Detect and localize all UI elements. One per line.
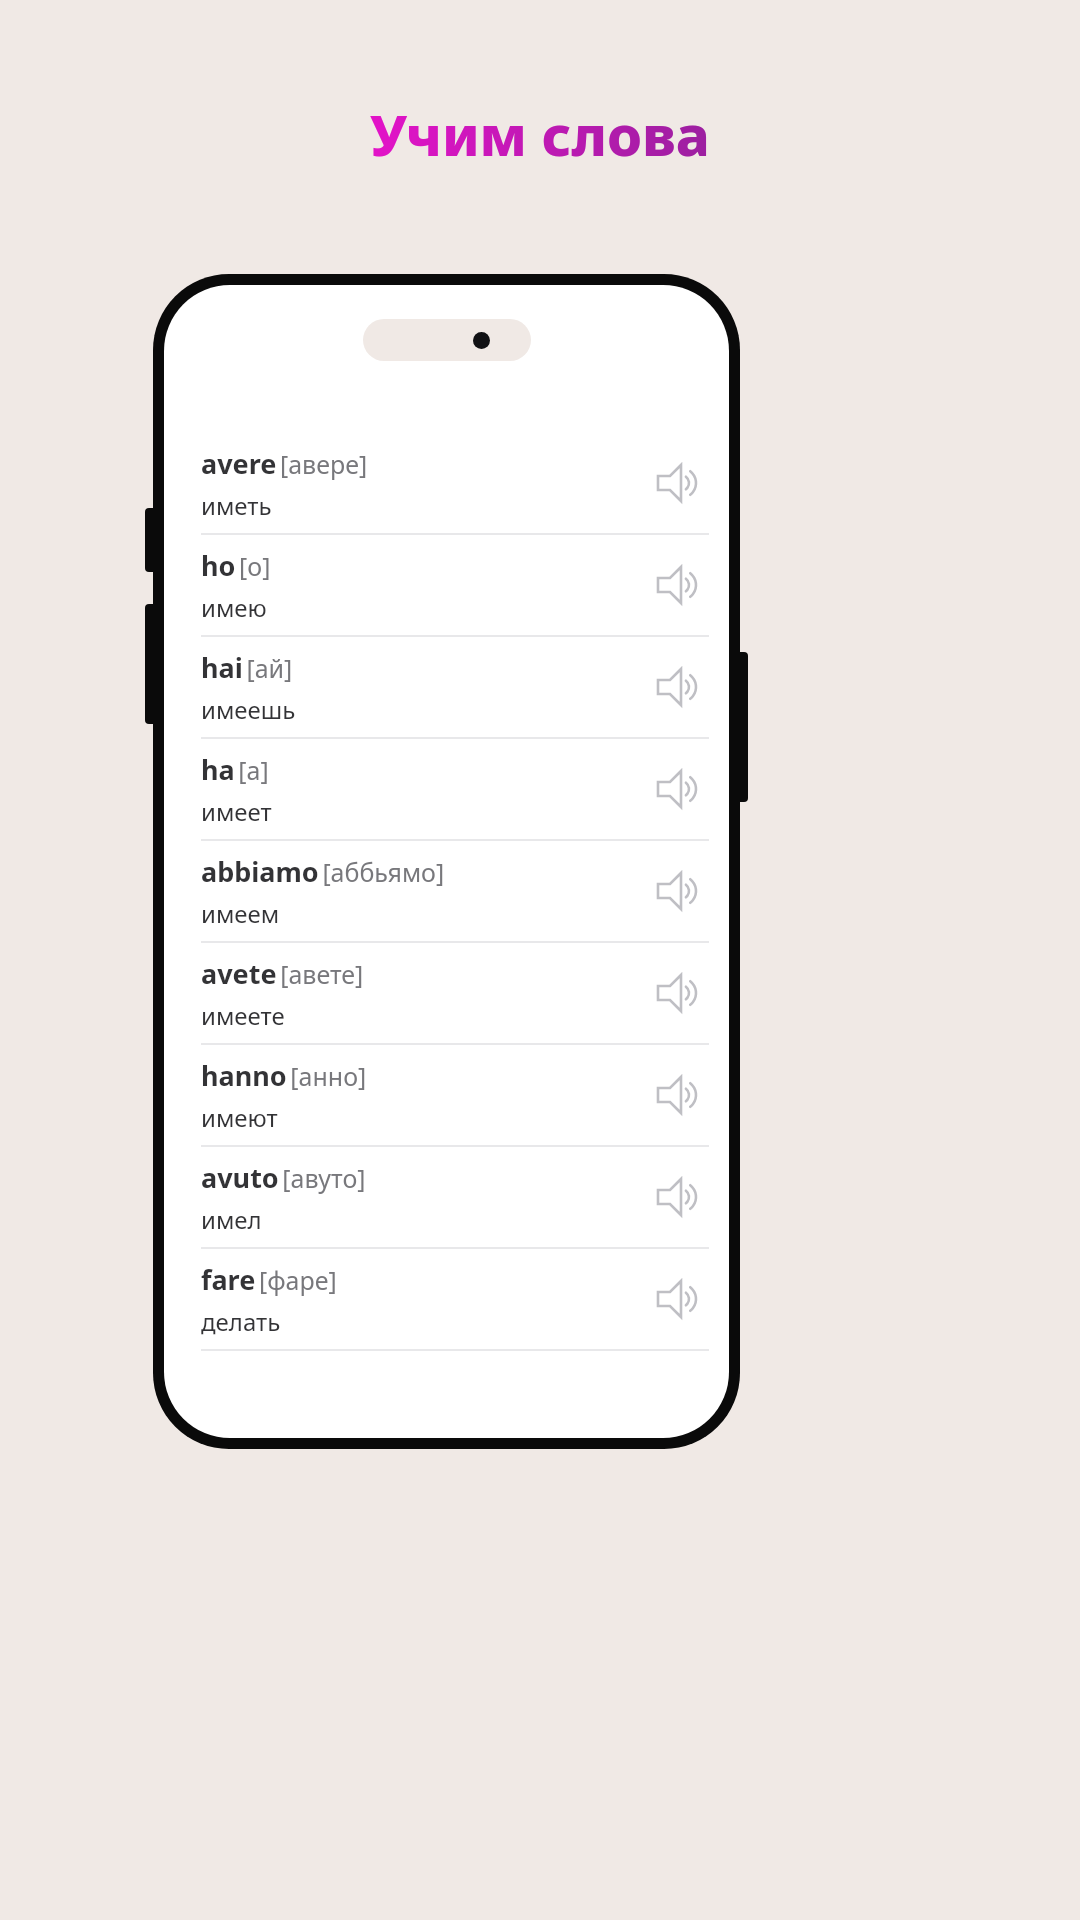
staticText: делать [201, 1305, 281, 1338]
staticText: имел [201, 1203, 262, 1236]
button[interactable]: ho [о] [164, 535, 729, 637]
staticText: fare [фаре] [201, 1261, 337, 1298]
staticText: имеете [201, 999, 285, 1032]
staticText: имеют [201, 1101, 278, 1134]
staticText: ha [а] [201, 751, 269, 788]
button[interactable]: Play pronunciation [651, 658, 709, 716]
button[interactable]: hai [ай] [164, 637, 729, 739]
button[interactable]: hanno [анно] [164, 1045, 729, 1147]
staticText: avuto [авуто] [201, 1159, 366, 1196]
button[interactable]: Play pronunciation [651, 1270, 709, 1328]
staticText: иметь [201, 489, 272, 522]
button[interactable]: Play pronunciation [651, 1168, 709, 1226]
staticText: avete [авете] [201, 955, 364, 992]
button[interactable]: Play pronunciation [651, 862, 709, 920]
staticText: имеешь [201, 693, 296, 726]
button[interactable]: ha [а] [164, 739, 729, 841]
staticText: avere [авере] [201, 445, 368, 482]
button[interactable]: fare [фаре] [164, 1249, 729, 1351]
button[interactable]: abbiamo [аббьямо] [164, 841, 729, 943]
button[interactable]: Play pronunciation [651, 760, 709, 818]
button[interactable]: Play pronunciation [651, 556, 709, 614]
button[interactable]: Play pronunciation [651, 964, 709, 1022]
button[interactable]: Play pronunciation [651, 1066, 709, 1124]
staticText: abbiamo [аббьямо] [201, 853, 445, 890]
staticText: hai [ай] [201, 649, 293, 686]
button[interactable]: avete [авете] [164, 943, 729, 1045]
staticText: имеет [201, 795, 272, 828]
staticText: ho [о] [201, 547, 271, 584]
button[interactable]: avere [авере] [164, 433, 729, 535]
staticText: hanno [анно] [201, 1057, 367, 1094]
staticText: Учим слова [370, 96, 710, 172]
button[interactable]: avuto [авуто] [164, 1147, 729, 1249]
staticText: имею [201, 591, 267, 624]
staticText: имеем [201, 897, 280, 930]
button[interactable]: Play pronunciation [651, 454, 709, 512]
